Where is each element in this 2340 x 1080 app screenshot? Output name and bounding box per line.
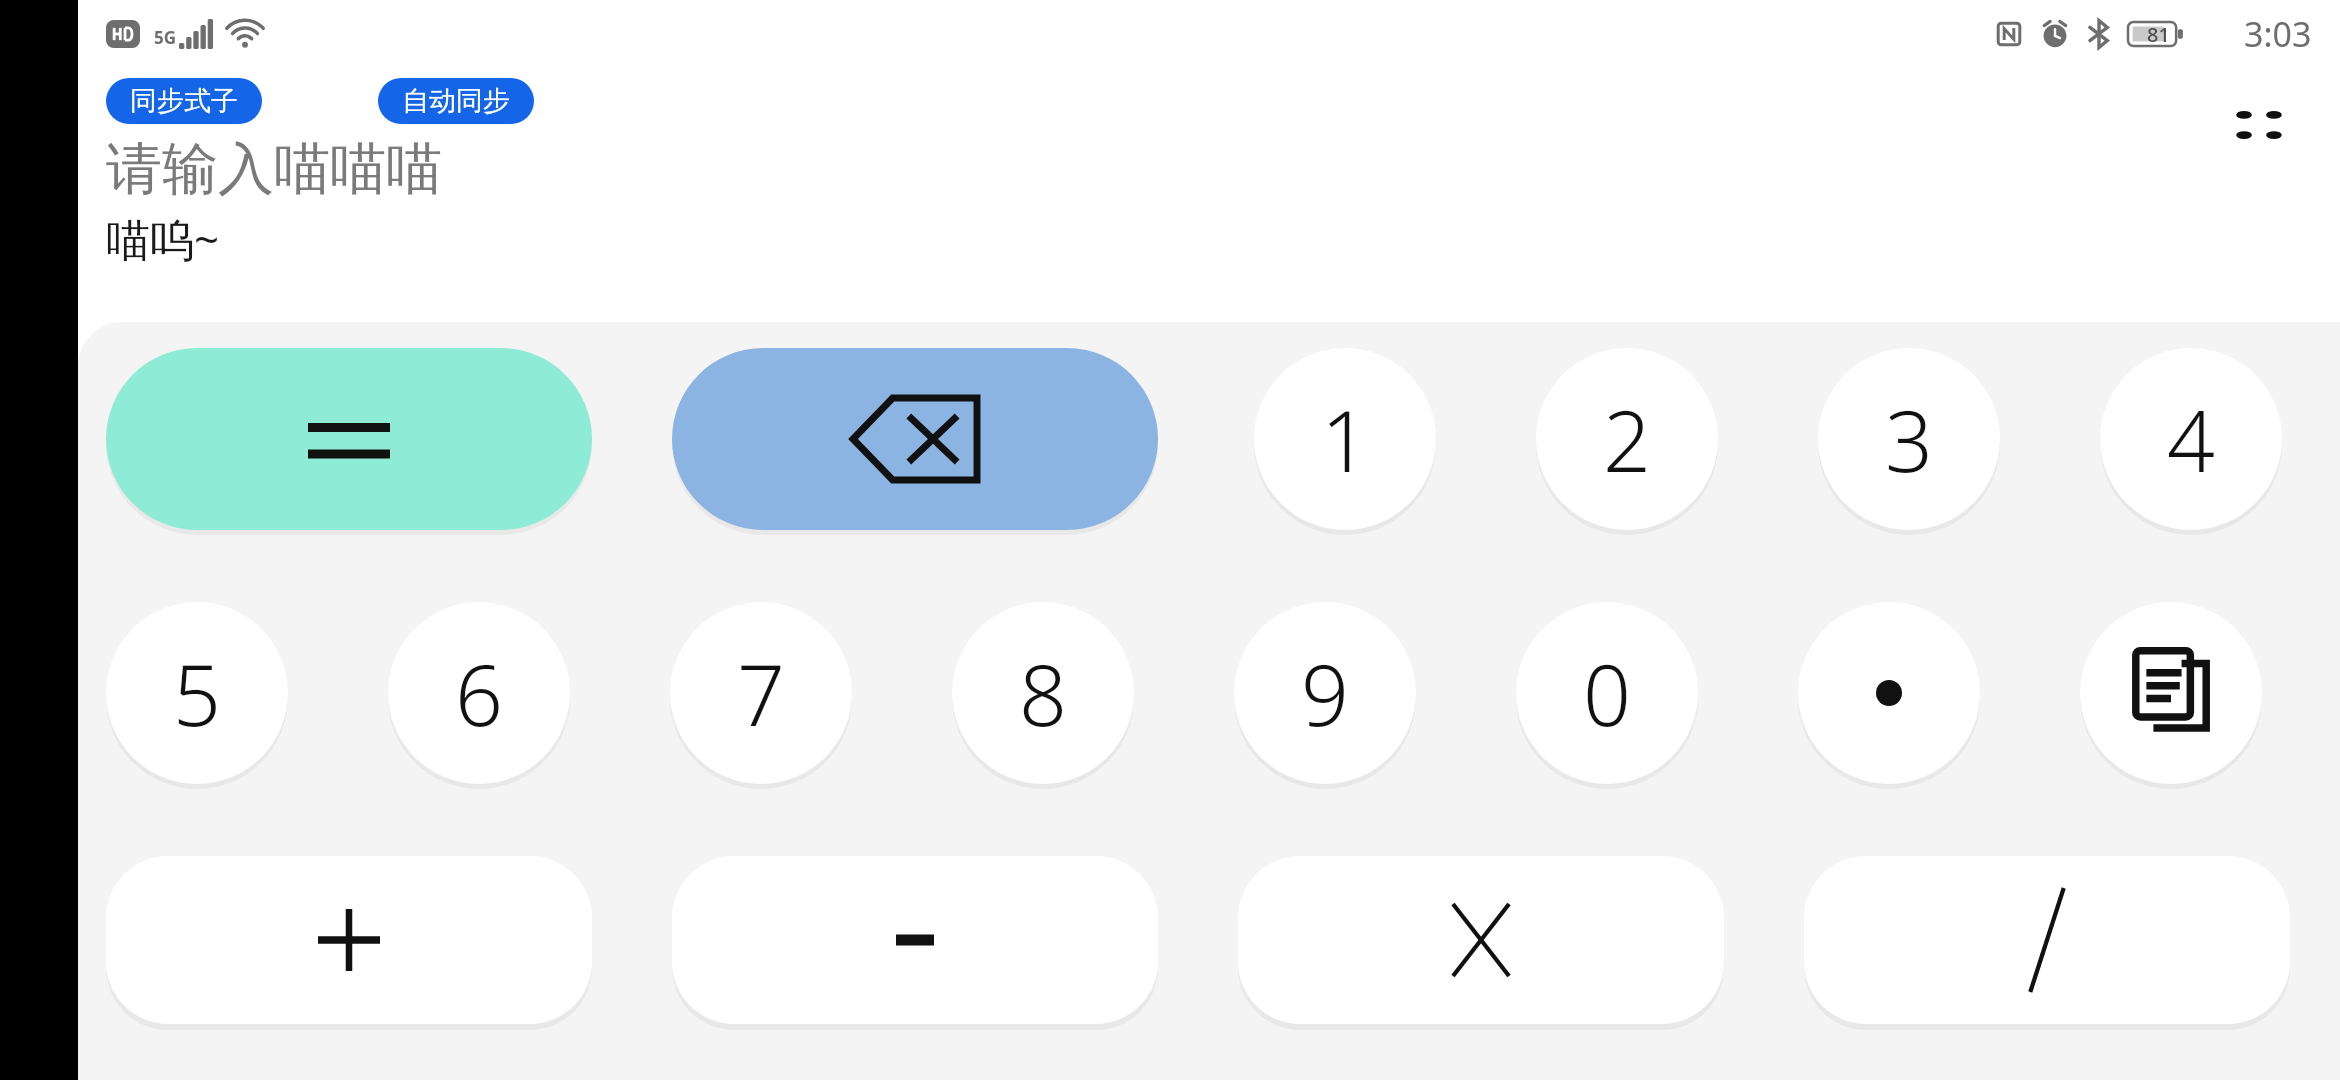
staticText: 同步式子 <box>130 84 238 118</box>
staticText: 8 <box>1019 636 1067 750</box>
button[interactable]: Backspace <box>672 348 1158 530</box>
button[interactable]: 1 <box>1254 348 1436 530</box>
staticText: 5G <box>154 26 177 49</box>
button[interactable]: 6 <box>388 602 570 784</box>
button[interactable]: 同步式子 <box>106 78 262 124</box>
staticText: 7 <box>737 636 785 750</box>
staticText: 9 <box>1301 636 1349 750</box>
button[interactable]: 2 <box>1536 348 1718 530</box>
button[interactable]: 9 <box>1234 602 1416 784</box>
button[interactable]: 8 <box>952 602 1134 784</box>
staticText: 喵呜~ <box>106 209 220 269</box>
button[interactable]: Multiply <box>1238 856 1724 1024</box>
button[interactable]: 自动同步 <box>378 78 534 124</box>
button[interactable]: Plus <box>106 856 592 1024</box>
button[interactable]: Divide <box>1804 856 2290 1024</box>
staticText: 4 <box>2167 382 2215 496</box>
button[interactable]: Equals <box>106 348 592 530</box>
staticText: 81 <box>2147 21 2170 48</box>
staticText: 3:03 <box>2244 11 2312 57</box>
staticText: 2 <box>1603 382 1651 496</box>
button[interactable]: Minus <box>672 856 1158 1024</box>
staticText: 自动同步 <box>402 84 510 118</box>
button[interactable]: Paste <box>2080 602 2262 784</box>
staticText: 5 <box>173 636 221 750</box>
staticText: 请输入喵喵喵 <box>106 134 442 205</box>
button[interactable]: More options <box>2204 82 2314 168</box>
button[interactable]: 5 <box>106 602 288 784</box>
staticText: 0 <box>1583 636 1631 750</box>
staticText: 3 <box>1885 382 1933 496</box>
button[interactable]: Decimal point <box>1798 602 1980 784</box>
button[interactable]: 0 <box>1516 602 1698 784</box>
staticText: 6 <box>455 636 503 750</box>
staticText: 1 <box>1321 382 1369 496</box>
button[interactable]: 7 <box>670 602 852 784</box>
button[interactable]: 4 <box>2100 348 2282 530</box>
button[interactable]: 3 <box>1818 348 2000 530</box>
